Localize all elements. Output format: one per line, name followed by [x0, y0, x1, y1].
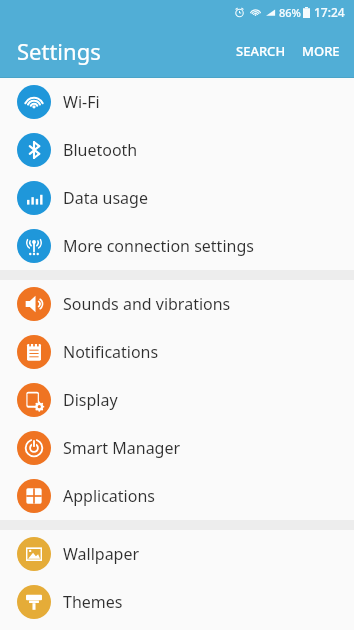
button[interactable]: Notifications	[0, 328, 354, 376]
staticText: Wi-Fi	[63, 91, 100, 113]
button[interactable]: SEARCH	[228, 30, 294, 72]
staticText: Data usage	[63, 187, 148, 209]
staticText: SEARCH	[236, 42, 286, 60]
other: More connection settings	[17, 229, 51, 263]
button[interactable]: Data usage	[0, 174, 354, 222]
staticText: Smart Manager	[63, 437, 181, 459]
other: Bluetooth	[17, 133, 51, 167]
button[interactable]: Themes	[0, 578, 354, 626]
other: Data usage	[17, 181, 51, 215]
button[interactable]: Applications	[0, 472, 354, 520]
button[interactable]: Bluetooth	[0, 126, 354, 174]
other: Display	[17, 383, 51, 417]
button[interactable]: MORE	[294, 30, 354, 72]
staticText: Settings	[17, 36, 101, 66]
other: Sounds and vibrations	[17, 287, 51, 321]
other: Wi-Fi	[17, 85, 51, 119]
other: Wallpaper	[17, 537, 51, 571]
staticText: 86%	[279, 5, 301, 20]
staticText: 17:24	[314, 4, 345, 20]
staticText: Display	[63, 389, 118, 411]
button[interactable]: Wallpaper	[0, 530, 354, 578]
button[interactable]: More connection settings	[0, 222, 354, 270]
staticText: Sounds and vibrations	[63, 293, 231, 315]
button[interactable]: Wi-Fi	[0, 78, 354, 126]
staticText: MORE	[302, 42, 340, 60]
staticText: Wallpaper	[63, 543, 140, 565]
staticText: Bluetooth	[63, 139, 138, 161]
staticText: Notifications	[63, 341, 159, 363]
button[interactable]: Display	[0, 376, 354, 424]
other: Notifications	[17, 335, 51, 369]
other: Applications	[17, 479, 51, 513]
staticText: More connection settings	[63, 235, 254, 257]
button[interactable]: Smart Manager	[0, 424, 354, 472]
other: Themes	[17, 585, 51, 619]
other: Smart Manager	[17, 431, 51, 465]
staticText: Applications	[63, 485, 155, 507]
button[interactable]: Sounds and vibrations	[0, 280, 354, 328]
staticText: Themes	[63, 591, 123, 613]
